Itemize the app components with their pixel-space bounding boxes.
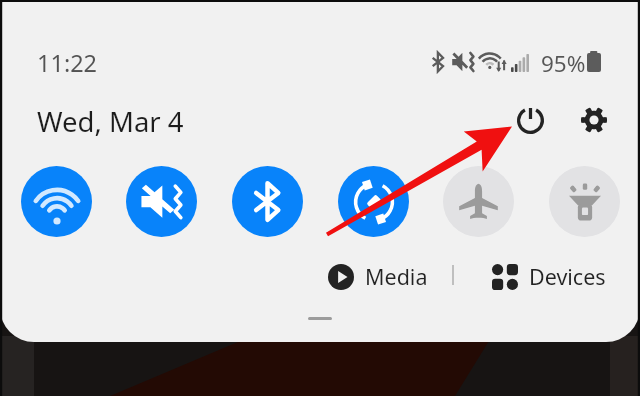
staticText: Media [365, 262, 428, 291]
button[interactable]: Bluetooth [232, 166, 303, 237]
button[interactable]: Auto rotate [338, 166, 409, 237]
button[interactable]: Power [508, 98, 552, 142]
button[interactable]: Devices [485, 259, 615, 294]
staticText: 11:22 [37, 47, 98, 79]
button[interactable]: Flashlight [549, 166, 620, 237]
button[interactable]: Wi-Fi [21, 166, 92, 237]
staticText: 95% [541, 48, 586, 79]
button[interactable]: Settings [572, 98, 616, 142]
button[interactable]: Mute [126, 166, 197, 237]
staticText: Devices [529, 262, 606, 291]
button[interactable]: Media [321, 259, 437, 294]
button[interactable]: Airplane mode [443, 166, 514, 237]
staticText: Wed, Mar 4 [37, 103, 184, 140]
